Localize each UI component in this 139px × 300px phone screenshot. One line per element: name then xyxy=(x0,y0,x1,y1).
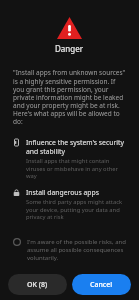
staticText: OK (8) xyxy=(27,280,48,290)
other: Lock icon xyxy=(13,189,20,196)
button[interactable]: Security icon xyxy=(0,138,139,179)
staticText: "Install apps from unknown sources" is a… xyxy=(13,68,126,125)
other: Security icon xyxy=(13,139,20,146)
staticText: I'm aware of the possible risks, and ass… xyxy=(27,238,126,262)
staticText: Danger xyxy=(55,43,84,54)
staticText: Install apps that might contain viruses … xyxy=(26,157,126,179)
staticText: Influence the system's security and stab… xyxy=(26,138,126,156)
staticText: Install dangerous apps xyxy=(26,188,99,197)
button[interactable]: OK (8) xyxy=(8,274,67,295)
button[interactable]: Cancel xyxy=(72,274,131,295)
button[interactable]: I'm aware of the possible risks, and ass… xyxy=(0,234,139,266)
button[interactable]: Lock icon xyxy=(0,188,139,220)
staticText: Some third party apps might attack your … xyxy=(26,198,126,220)
staticText: Cancel xyxy=(90,280,113,290)
